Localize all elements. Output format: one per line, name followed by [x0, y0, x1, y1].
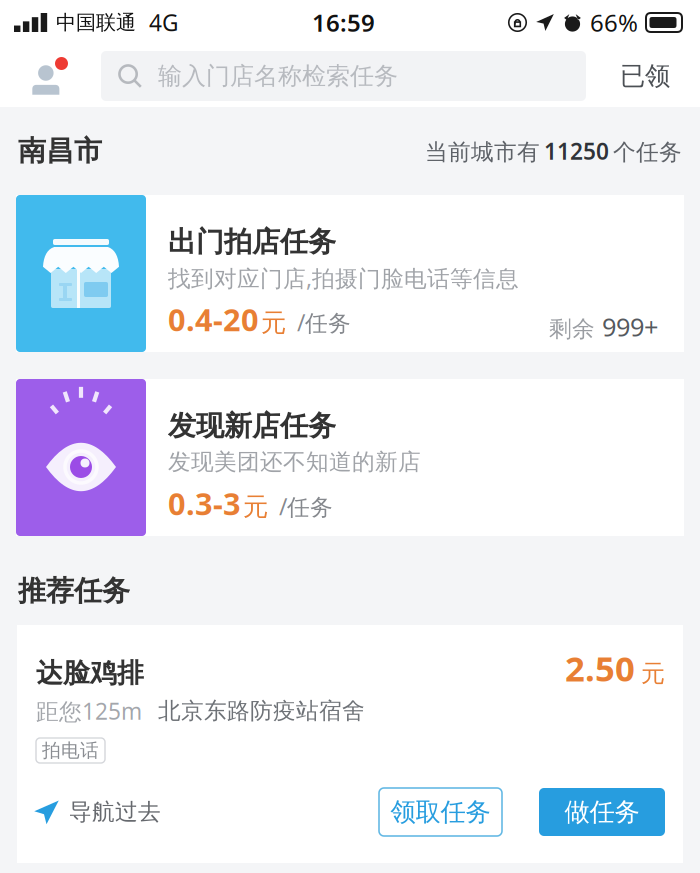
staticText: 999+ [602, 310, 658, 343]
staticText: 0.3-3 [168, 483, 241, 524]
staticText: 发现美团还不知道的新店 [168, 448, 421, 476]
staticText: 个任务 [613, 138, 682, 166]
staticText: 元 [243, 491, 268, 522]
staticText: 出门拍店任务 [168, 225, 336, 259]
staticText: 当前城市有 [425, 138, 540, 166]
staticText: 4G [149, 7, 179, 37]
button[interactable]: 导航过去 [34, 788, 161, 836]
staticText: 剩余 [549, 315, 602, 343]
staticText: 南昌市 [18, 134, 102, 168]
button[interactable]: 输入门店名称检索任务 [101, 51, 586, 101]
staticText: 2.50 [565, 645, 635, 691]
button[interactable]: 已领 [594, 48, 696, 104]
staticText: 北京东路防疫站宿舍 [158, 697, 365, 725]
staticText: 发现新店任务 [168, 409, 336, 443]
button[interactable]: 出门拍店任务 [0, 195, 700, 352]
button[interactable]: 领取任务 [379, 788, 502, 836]
staticText: 16:59 [312, 7, 375, 38]
staticText: 距您125m [36, 696, 142, 726]
staticText: /任务 [279, 491, 333, 521]
button[interactable]: 个人中心 [30, 50, 101, 102]
staticText: /任务 [297, 307, 351, 337]
staticText: 11250 [544, 136, 609, 166]
button[interactable]: 做任务 [539, 788, 665, 836]
staticText: 元 [641, 659, 665, 688]
staticText: 已领 [620, 60, 670, 91]
staticText: 领取任务 [390, 796, 490, 827]
staticText: 66% [590, 7, 638, 38]
button[interactable]: 发现新店任务 [0, 379, 700, 536]
staticText: 拍电话 [42, 739, 99, 762]
staticText: 元 [261, 307, 286, 338]
staticText: 输入门店名称检索任务 [158, 61, 398, 91]
staticText: 0.4-20 [168, 299, 259, 340]
staticText: 达脸鸡排 [36, 657, 144, 689]
staticText: 导航过去 [69, 798, 161, 826]
staticText: 做任务 [564, 796, 639, 827]
staticText: 找到对应门店,拍摄门脸电话等信息 [168, 263, 519, 293]
staticText: 推荐任务 [18, 574, 130, 608]
staticText: 中国联通 [56, 10, 136, 35]
